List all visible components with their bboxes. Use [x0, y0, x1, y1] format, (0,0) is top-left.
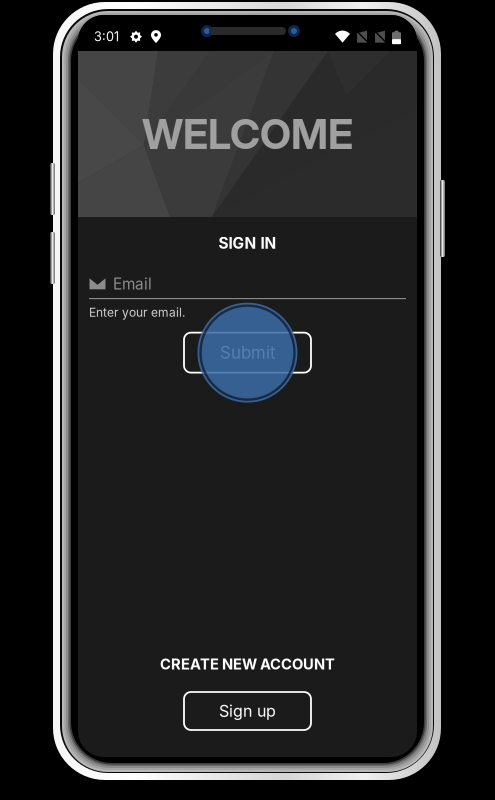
staticText: CREATE NEW ACCOUNT — [160, 655, 335, 673]
staticText: SIGN IN — [218, 234, 276, 253]
staticText: WELCOME — [142, 109, 353, 159]
staticText: Submit — [220, 342, 275, 363]
button[interactable]: Submit — [184, 333, 311, 373]
button[interactable]: Sign up — [184, 692, 311, 730]
staticText: 3:01 — [94, 29, 119, 44]
staticText: Email — [113, 275, 152, 293]
staticText: Enter your email. — [89, 305, 185, 320]
staticText: Sign up — [219, 701, 276, 721]
